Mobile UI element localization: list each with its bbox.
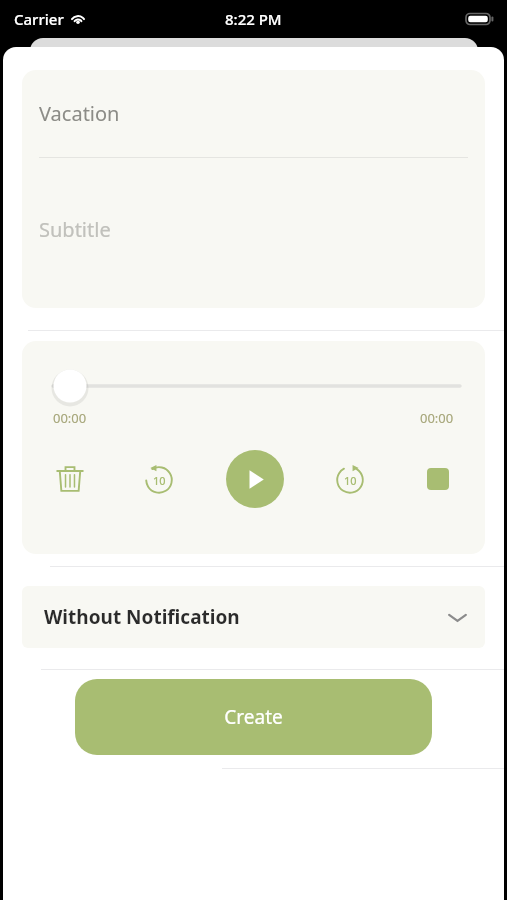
staticText: Carrier	[14, 9, 64, 29]
button[interactable]: Forward 10 seconds	[328, 457, 372, 501]
staticText: 10	[153, 473, 166, 488]
button[interactable]: Without Notification	[22, 586, 485, 648]
staticText: Vacation	[39, 100, 120, 127]
staticText: 00:00	[53, 409, 87, 427]
button[interactable]: Stop	[417, 458, 459, 500]
button[interactable]: Create	[75, 679, 432, 755]
button[interactable]: Rewind 10 seconds	[137, 457, 181, 501]
staticText: 00:00	[420, 409, 454, 427]
button[interactable]: Play	[226, 450, 284, 508]
staticText: Create	[224, 704, 283, 730]
staticText: Subtitle	[39, 216, 111, 243]
button[interactable]: Subtitle	[22, 158, 485, 308]
button[interactable]	[22, 341, 485, 409]
staticText: 8:22 PM	[225, 9, 282, 29]
staticText: Without Notification	[44, 604, 448, 630]
staticText: 10	[344, 473, 357, 488]
button[interactable]: Vacation	[22, 70, 485, 157]
button[interactable]: Delete	[48, 457, 92, 501]
